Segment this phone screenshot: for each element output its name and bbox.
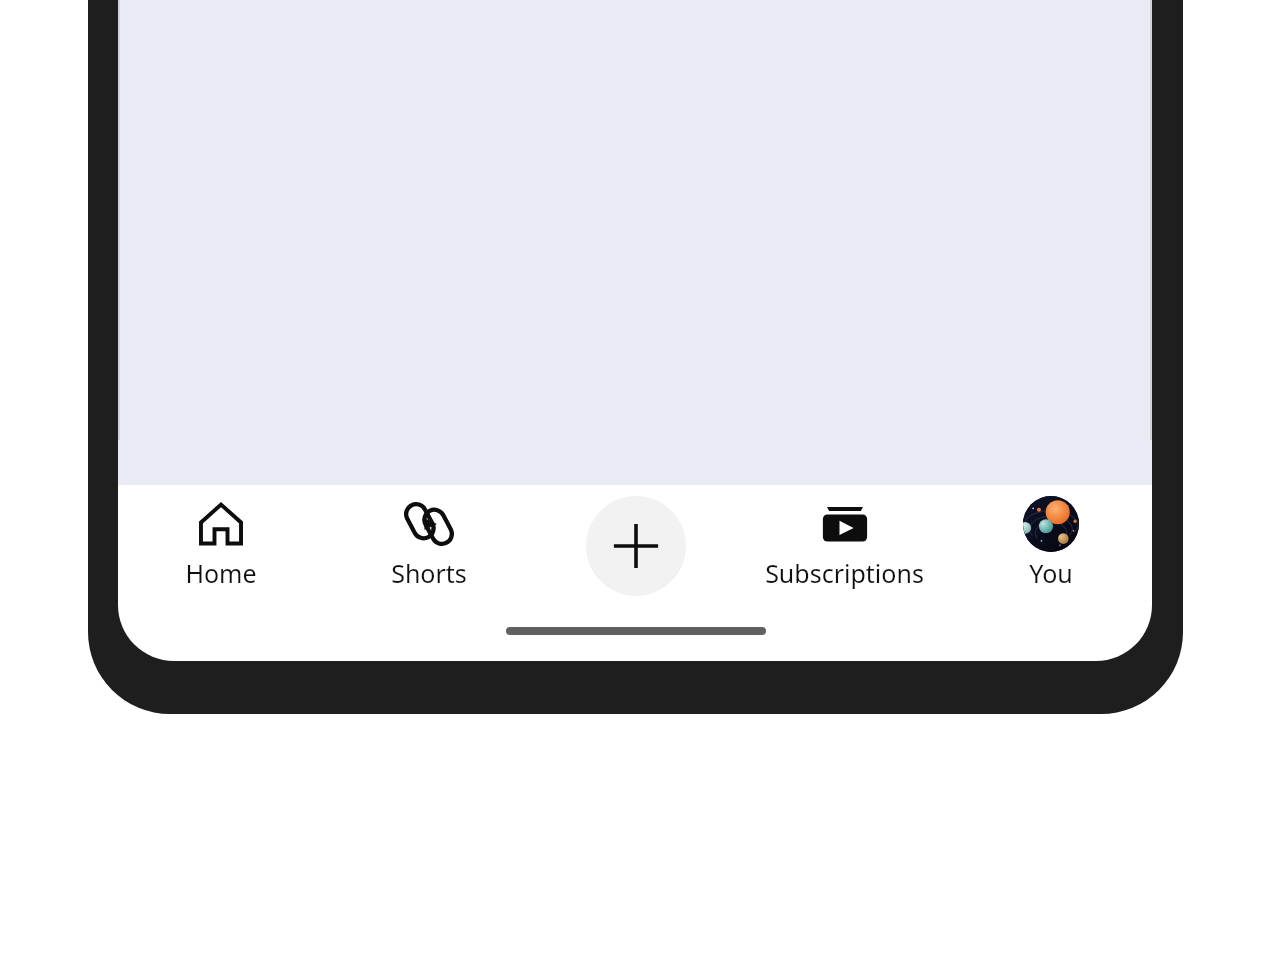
staticText: You — [1029, 556, 1073, 590]
staticText: Subscriptions — [765, 556, 924, 590]
button[interactable]: Home — [126, 496, 316, 594]
button[interactable]: Create — [586, 496, 686, 596]
button[interactable]: You — [956, 496, 1146, 594]
button[interactable]: Shorts — [334, 496, 524, 594]
staticText: Home — [185, 556, 257, 590]
button[interactable]: Subscriptions — [749, 496, 939, 594]
staticText: Shorts — [391, 556, 467, 590]
